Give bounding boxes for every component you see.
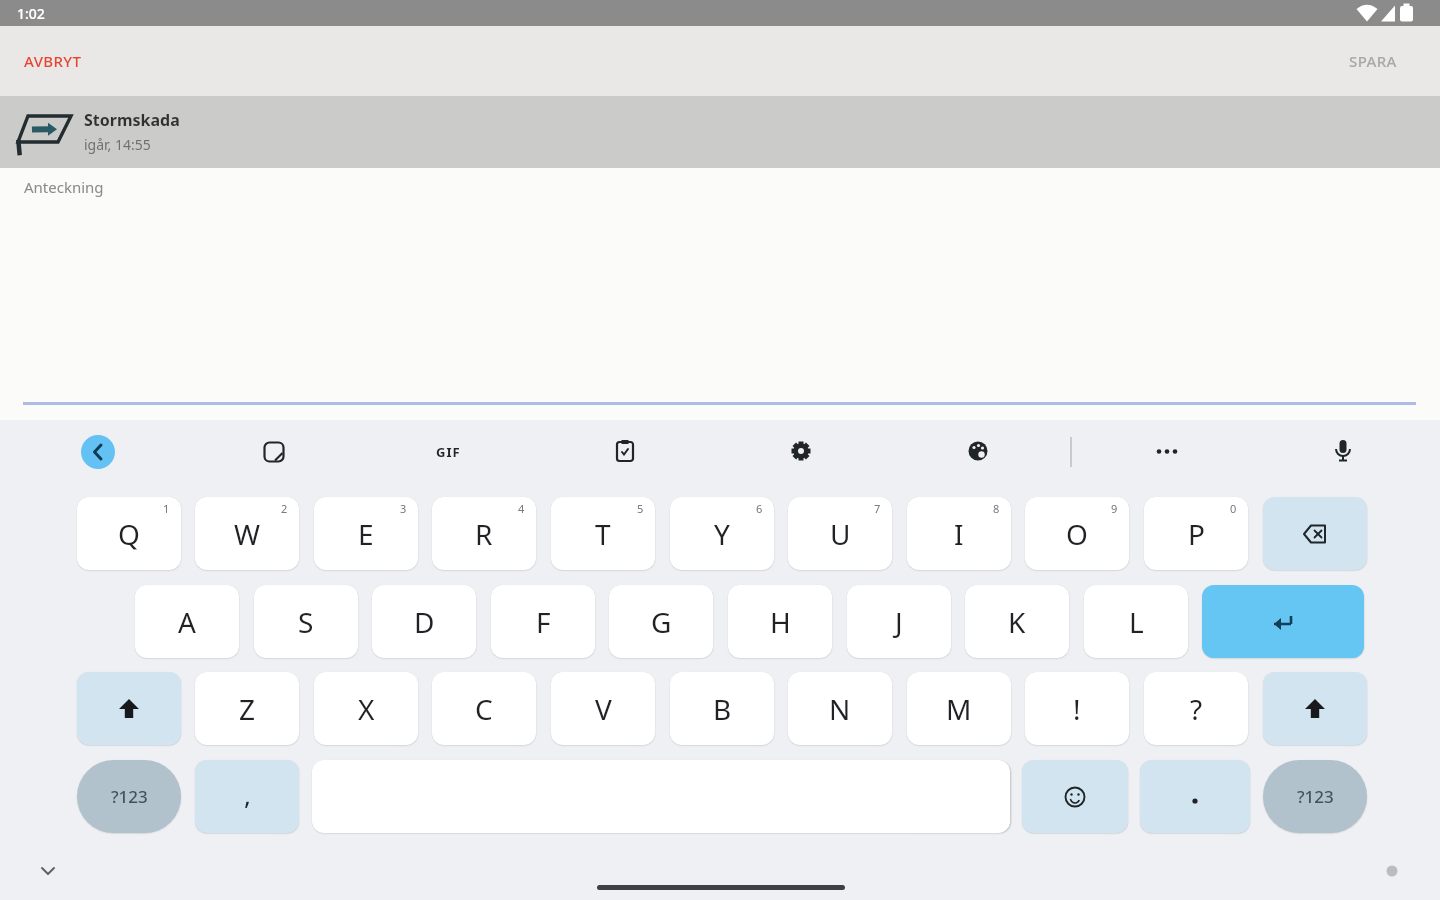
button[interactable]: P <box>1144 497 1248 570</box>
staticText: 6 <box>756 501 763 516</box>
button[interactable] <box>1022 760 1128 833</box>
button[interactable]: SPARA <box>1349 51 1397 71</box>
staticText: C <box>475 690 493 728</box>
staticText: B <box>713 690 732 728</box>
staticText: U <box>830 515 851 553</box>
button[interactable]: Stormskada <box>0 96 1440 168</box>
staticText: L <box>1129 603 1144 641</box>
button[interactable]: , <box>195 760 299 833</box>
staticText: igår, 14:55 <box>84 135 151 154</box>
button[interactable] <box>1263 497 1367 570</box>
staticText: I <box>954 515 964 553</box>
button[interactable] <box>81 435 115 469</box>
button[interactable]: N <box>788 672 892 745</box>
staticText: F <box>536 603 551 641</box>
button[interactable]: ?123 <box>77 760 181 833</box>
staticText: N <box>829 690 851 728</box>
button[interactable] <box>1154 439 1180 463</box>
staticText: D <box>414 603 435 641</box>
staticText: O <box>1066 515 1088 553</box>
button[interactable]: ! <box>1025 672 1129 745</box>
button[interactable] <box>262 440 286 464</box>
staticText: P <box>1188 515 1205 553</box>
staticText: M <box>946 690 972 728</box>
button[interactable]: O <box>1025 497 1129 570</box>
button[interactable] <box>77 672 181 745</box>
button[interactable]: Y <box>670 497 774 570</box>
button[interactable]: E <box>314 497 418 570</box>
staticText: 1 <box>163 501 170 516</box>
button[interactable]: ?123 <box>1263 760 1367 833</box>
staticText: S <box>298 603 314 641</box>
button[interactable]: H <box>728 585 832 658</box>
button[interactable] <box>613 439 637 463</box>
staticText: ! <box>1073 690 1081 728</box>
button[interactable]: R <box>432 497 536 570</box>
staticText: G <box>651 603 672 641</box>
button[interactable] <box>1263 672 1367 745</box>
button[interactable]: AVBRYT <box>24 51 82 71</box>
staticText: 8 <box>993 501 1000 516</box>
staticText: Y <box>714 515 730 553</box>
button[interactable]: Z <box>195 672 299 745</box>
staticText: ?123 <box>1297 785 1334 808</box>
button[interactable]: J <box>847 585 951 658</box>
staticText: 4 <box>518 501 525 516</box>
button[interactable]: U <box>788 497 892 570</box>
button[interactable] <box>1331 438 1355 466</box>
button[interactable]: B <box>670 672 774 745</box>
button[interactable] <box>1140 760 1250 833</box>
button[interactable]: G <box>609 585 713 658</box>
staticText: , <box>244 777 251 812</box>
button[interactable]: L <box>1084 585 1188 658</box>
button[interactable]: X <box>314 672 418 745</box>
button[interactable]: C <box>432 672 536 745</box>
staticText: A <box>178 603 196 641</box>
staticText: Q <box>118 515 140 553</box>
staticText: 1:02 <box>17 4 45 23</box>
button[interactable]: S <box>254 585 358 658</box>
staticText: J <box>895 603 903 641</box>
staticText: SPARA <box>1349 51 1397 71</box>
staticText: X <box>358 690 375 728</box>
staticText: 9 <box>1111 501 1118 516</box>
button[interactable]: D <box>372 585 476 658</box>
button[interactable] <box>1202 585 1364 658</box>
button[interactable]: I <box>907 497 1011 570</box>
button[interactable]: ? <box>1144 672 1248 745</box>
staticText: W <box>234 515 261 553</box>
staticText: Z <box>239 690 256 728</box>
button[interactable]: K <box>965 585 1069 658</box>
button[interactable]: F <box>491 585 595 658</box>
button[interactable]: GIF <box>436 443 461 461</box>
button[interactable]: W <box>195 497 299 570</box>
staticText: 7 <box>874 501 881 516</box>
staticText: Stormskada <box>84 109 180 131</box>
staticText: 3 <box>400 501 407 516</box>
staticText: 2 <box>281 501 288 516</box>
staticText: K <box>1008 603 1026 641</box>
staticText: T <box>595 515 611 553</box>
staticText: ?123 <box>111 785 148 808</box>
staticText: AVBRYT <box>24 51 82 71</box>
button[interactable]: T <box>551 497 655 570</box>
staticText: H <box>770 603 791 641</box>
button[interactable] <box>966 439 990 463</box>
button[interactable]: A <box>135 585 239 658</box>
staticText: E <box>358 515 374 553</box>
staticText: Anteckning <box>24 177 104 197</box>
button[interactable]: M <box>907 672 1011 745</box>
staticText: 0 <box>1230 501 1237 516</box>
button[interactable]: V <box>551 672 655 745</box>
staticText: ? <box>1190 690 1203 728</box>
staticText: 5 <box>637 501 644 516</box>
staticText: V <box>595 690 612 728</box>
button[interactable] <box>789 439 813 463</box>
staticText: GIF <box>436 443 461 461</box>
button[interactable]: Q <box>77 497 181 570</box>
staticText: R <box>475 515 493 553</box>
